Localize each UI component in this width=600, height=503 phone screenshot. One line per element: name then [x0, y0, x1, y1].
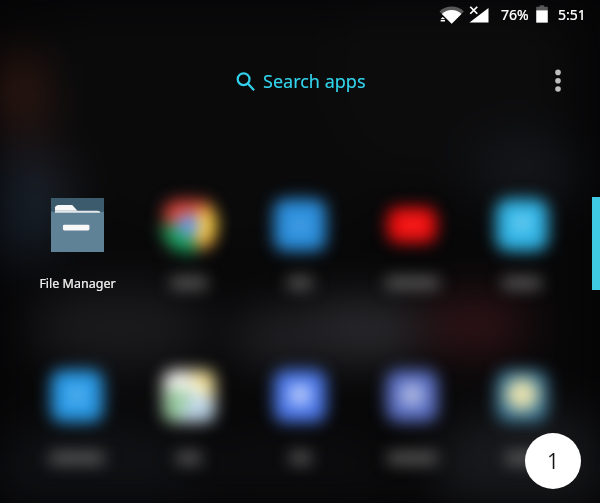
staticText: 5:51	[558, 5, 586, 24]
staticText: 1	[547, 447, 560, 476]
staticText: File Manager	[39, 275, 116, 292]
button[interactable]: More options	[539, 62, 575, 98]
button[interactable]: File Manager	[22, 192, 132, 300]
button[interactable]: Search apps	[230, 64, 375, 98]
staticText: 76%	[501, 5, 529, 24]
staticText: Search apps	[263, 69, 366, 94]
button[interactable]: 1	[525, 433, 581, 489]
